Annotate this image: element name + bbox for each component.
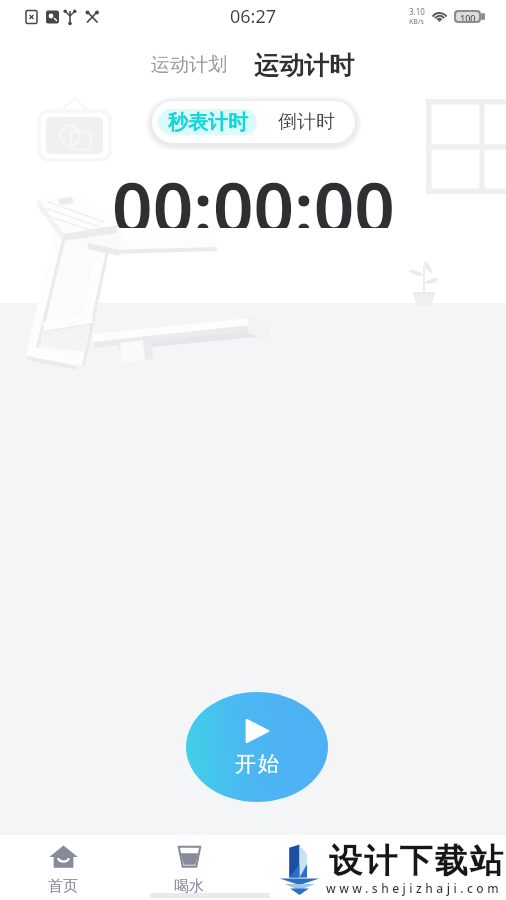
staticText: KB/s	[409, 17, 424, 27]
button[interactable]: 首页	[0, 835, 126, 900]
button[interactable]: 秒表计时	[158, 109, 257, 135]
staticText: 喝水	[174, 877, 204, 896]
staticText: 3.10	[409, 6, 425, 17]
staticText: 运动	[301, 877, 331, 896]
staticText: 倒计时	[278, 110, 335, 134]
staticText: 运动计时	[254, 50, 354, 81]
button[interactable]: 我的	[379, 835, 506, 900]
button[interactable]: 运动计时	[249, 47, 359, 83]
staticText: 秒表计时	[168, 110, 248, 135]
staticText: 我的	[428, 877, 458, 896]
staticText: 00:00:00	[112, 158, 395, 228]
button[interactable]: 运动计划	[143, 47, 235, 83]
button[interactable]: 开始	[186, 692, 328, 802]
staticText: 开始	[234, 751, 280, 777]
staticText: 100	[460, 12, 476, 21]
button[interactable]: 喝水	[126, 835, 252, 900]
staticText: www.shejizhaji.com	[326, 880, 503, 896]
staticText: 设计下载站	[328, 840, 504, 882]
staticText: 06:27	[230, 4, 277, 29]
staticText: 运动计划	[151, 53, 227, 77]
staticText: 首页	[48, 877, 78, 896]
button[interactable]: 倒计时	[257, 101, 355, 143]
button[interactable]: 运动	[252, 835, 379, 900]
